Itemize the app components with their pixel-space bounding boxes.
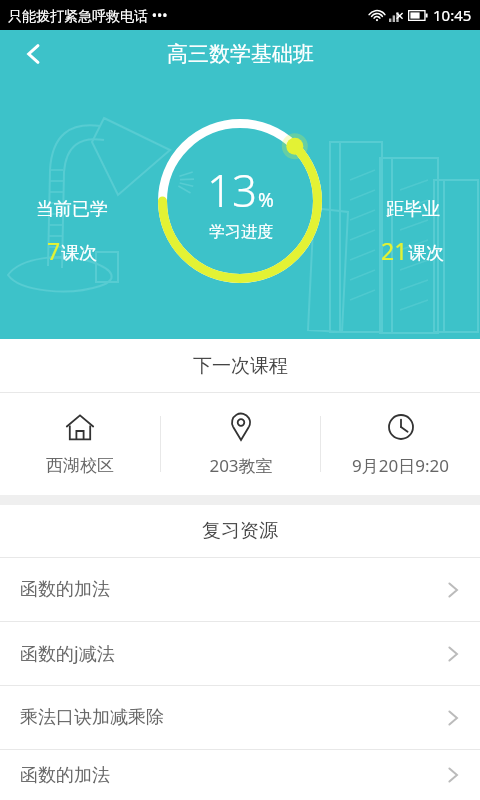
staticText: 复习资源 (202, 519, 278, 543)
button[interactable]: Campus (0, 393, 160, 495)
button[interactable]: Back (12, 32, 56, 76)
staticText: 函数的j减法 (20, 641, 444, 666)
staticText: 函数的加法 (20, 578, 444, 601)
staticText: 课次 (61, 242, 97, 265)
staticText: 10:45 (433, 5, 472, 25)
staticText: 课次 (408, 242, 444, 265)
staticText: 203教室 (209, 454, 273, 477)
staticText: 下一次课程 (193, 354, 288, 378)
other: Classroom (226, 412, 256, 442)
staticText: 13 (207, 160, 258, 220)
button[interactable]: 函数的j减法 (0, 622, 480, 685)
button[interactable]: 函数的加法 (0, 750, 480, 800)
staticText: % (258, 187, 274, 213)
other: Time (386, 412, 416, 442)
staticText: 西湖校区 (46, 455, 114, 476)
staticText: 距毕业 (386, 198, 440, 221)
staticText: 只能拨打紧急呼救电话 ••• (8, 6, 168, 25)
button[interactable]: 函数的加法 (0, 558, 480, 621)
staticText: 21 (381, 235, 408, 266)
staticText: 7 (47, 235, 61, 266)
other: Campus (65, 413, 95, 443)
staticText: 学习进度 (209, 222, 273, 242)
staticText: 当前已学 (36, 198, 108, 221)
staticText: 函数的加法 (20, 764, 444, 787)
staticText: 9月20日9:20 (352, 454, 449, 477)
staticText: 乘法口诀加减乘除 (20, 706, 444, 729)
staticText: 高三数学基础班 (167, 41, 314, 67)
button[interactable]: Time (321, 393, 480, 495)
button[interactable]: 乘法口诀加减乘除 (0, 686, 480, 749)
button[interactable]: Classroom (161, 393, 320, 495)
